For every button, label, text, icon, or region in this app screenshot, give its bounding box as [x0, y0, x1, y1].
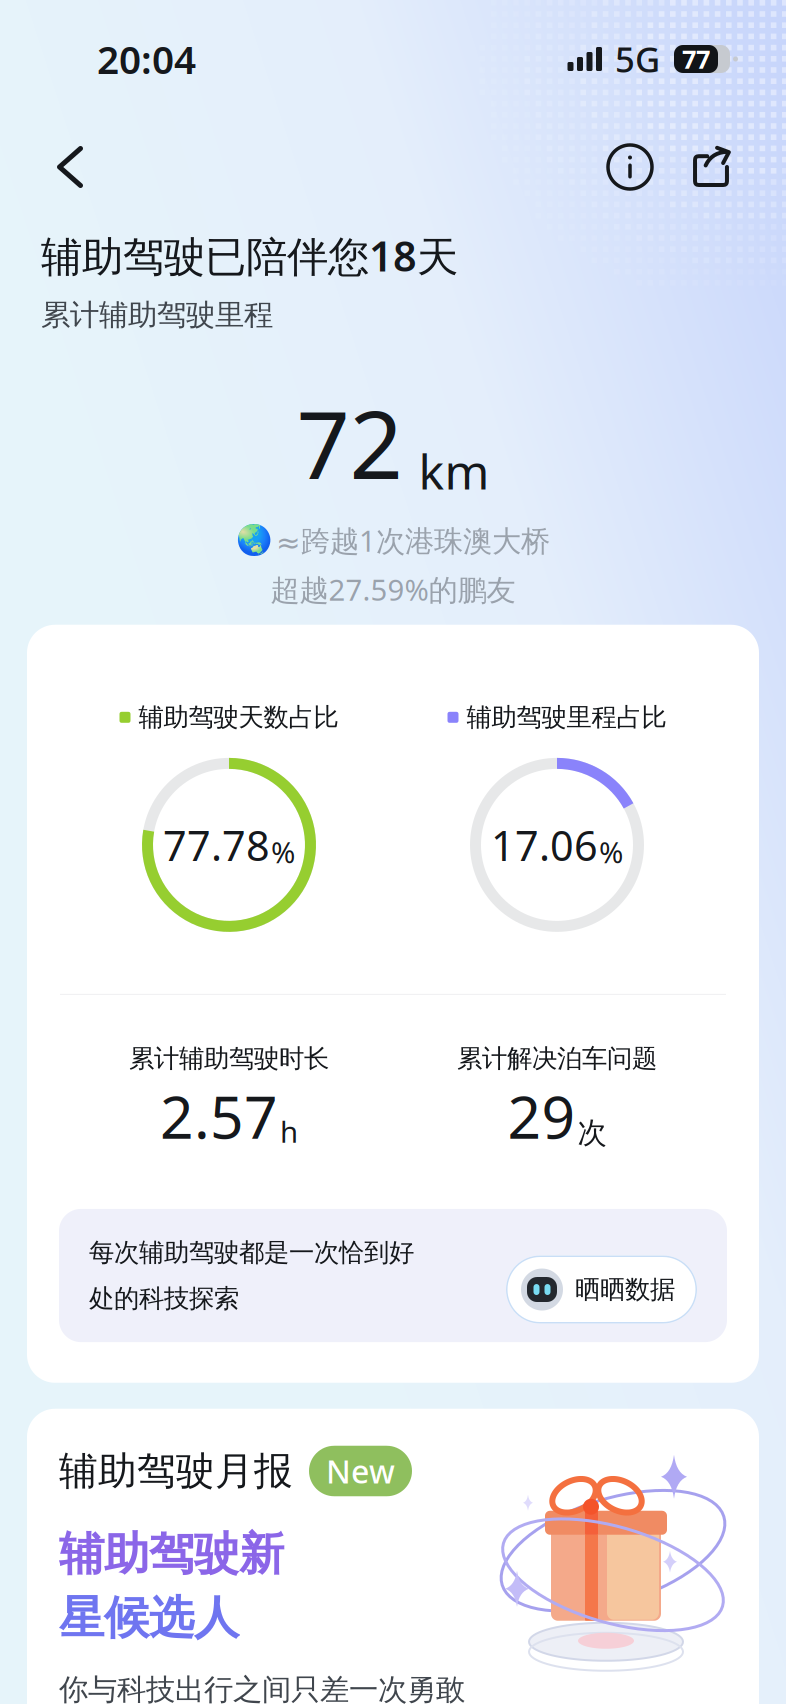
- staticText: 星候选人: [59, 1590, 239, 1646]
- staticText: 77: [682, 42, 710, 76]
- staticText: %: [599, 832, 623, 871]
- staticText: 次: [577, 1115, 606, 1151]
- staticText: 晒晒数据: [575, 1274, 675, 1305]
- staticText: 累计辅助驾驶里程: [41, 297, 273, 333]
- staticText: 辅助驾驶月报: [59, 1447, 293, 1495]
- staticText: 72: [296, 381, 402, 505]
- staticText: 辅助驾驶新: [59, 1526, 284, 1582]
- staticText: 辅助驾驶天数占比: [138, 702, 338, 733]
- staticText: 每次辅助驾驶都是一次恰到好: [89, 1237, 414, 1268]
- staticText: 20:04: [97, 33, 196, 85]
- staticText: 🌏: [236, 524, 273, 557]
- staticText: ≈跨越1次港珠澳大桥: [276, 521, 550, 560]
- staticText: 累计解决泊车问题: [457, 1043, 657, 1074]
- staticText: 辅助驾驶已陪伴您18天: [41, 228, 458, 283]
- staticText: New: [326, 1450, 395, 1492]
- staticText: 辅助驾驶里程占比: [466, 702, 666, 733]
- staticText: %: [271, 832, 295, 871]
- staticText: 超越27.59%的鹏友: [270, 570, 515, 609]
- staticText: 2.57: [160, 1077, 278, 1155]
- staticText: h: [280, 1112, 298, 1151]
- button[interactable]: Info: [602, 139, 658, 195]
- staticText: 29: [507, 1077, 575, 1155]
- staticText: 77.78: [163, 817, 270, 872]
- staticText: 你与科技出行之间只差一次勇敢: [59, 1672, 465, 1704]
- staticText: 17.06: [491, 817, 598, 872]
- button[interactable]: Share: [682, 138, 740, 196]
- staticText: km: [418, 439, 489, 503]
- button[interactable]: 晒晒数据: [506, 1241, 697, 1309]
- staticText: 累计辅助驾驶时长: [129, 1043, 329, 1074]
- button[interactable]: Back: [38, 135, 102, 199]
- staticText: 处的科技探索: [89, 1283, 239, 1314]
- staticText: 5G: [615, 36, 660, 82]
